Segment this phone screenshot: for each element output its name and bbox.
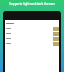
button[interactable] bbox=[5, 36, 59, 41]
button[interactable] bbox=[5, 31, 59, 36]
button[interactable] bbox=[5, 26, 59, 31]
button[interactable] bbox=[5, 41, 59, 46]
staticText: Supports light and dark themes bbox=[0, 2, 64, 6]
